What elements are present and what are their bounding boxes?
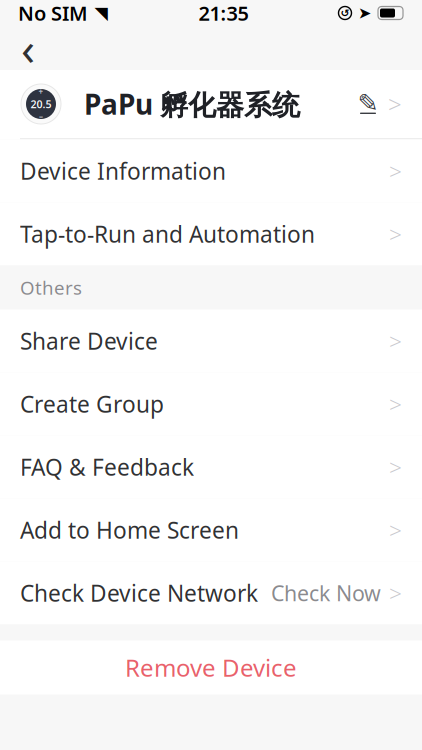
staticText: ‹ [21,18,35,78]
button[interactable]: Share Device [0,309,422,372]
button[interactable]: Create Group [0,372,422,435]
button[interactable]: + [0,70,422,138]
staticText: > [389,219,402,249]
staticText: > [388,88,402,120]
button[interactable]: Tap-to-Run and Automation [0,202,422,265]
staticText: FAQ & Feedback [20,452,194,482]
staticText: – [39,111,43,122]
staticText: > [389,578,402,608]
button[interactable]: FAQ & Feedback [0,435,422,498]
staticText: 20.5 [30,97,51,111]
staticText: Device Information [20,156,226,186]
staticText: Share Device [20,326,158,356]
staticText: Tap-to-Run and Automation [20,219,315,249]
staticText: Add to Home Screen [20,515,239,545]
staticText: Create Group [20,389,164,419]
staticText: 21:35 [198,0,248,26]
staticText: Remove Device [125,652,297,683]
staticText: ↺ [340,7,349,19]
staticText: PaPu 孵化器系统 [84,85,300,123]
staticText: Others [20,275,82,300]
button[interactable]: Add to Home Screen [0,498,422,561]
staticText: Check Device Network [20,578,258,608]
staticText: > [389,389,402,419]
staticText: > [389,326,402,356]
staticText: ✎ [357,89,378,117]
button[interactable]: Device Information [0,139,422,202]
button[interactable]: Back [4,26,52,70]
staticText: + [38,86,43,97]
staticText: > [389,452,402,482]
staticText: Check Now [271,579,381,607]
staticText: No SIM [18,0,88,26]
staticText: ➤ [358,4,371,22]
staticText: ◥ [94,3,107,23]
staticText: > [389,515,402,545]
staticText: > [389,156,402,186]
button[interactable]: Check Device Network [0,561,422,624]
button[interactable]: Remove Device [0,640,422,694]
